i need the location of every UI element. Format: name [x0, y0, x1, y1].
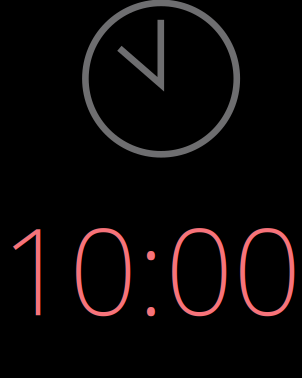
staticText: 10:00: [1, 189, 301, 348]
